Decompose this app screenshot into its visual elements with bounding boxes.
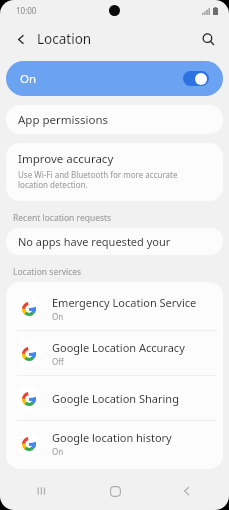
button[interactable]: Google Location Sharing bbox=[6, 376, 223, 420]
button[interactable]: Google Location Accuracy bbox=[6, 331, 223, 375]
staticText: On bbox=[52, 311, 64, 322]
staticText: Recent location requests bbox=[13, 212, 112, 224]
staticText: App permissions bbox=[18, 112, 109, 128]
button[interactable]: App permissions bbox=[6, 105, 223, 134]
button[interactable]: Google location history bbox=[6, 421, 223, 465]
staticText: Off bbox=[52, 356, 64, 367]
staticText: Improve accuracy bbox=[18, 151, 114, 167]
button[interactable]: Back bbox=[7, 25, 35, 53]
staticText: On bbox=[20, 71, 37, 87]
staticText: Google location history bbox=[52, 430, 172, 445]
staticText: 10:00 bbox=[16, 5, 37, 16]
button[interactable]: Back bbox=[173, 477, 201, 505]
button[interactable]: Emergency Location Service bbox=[6, 286, 223, 330]
button[interactable]: Search bbox=[194, 25, 222, 53]
button[interactable]: Recents bbox=[28, 477, 56, 505]
staticText: Emergency Location Service bbox=[52, 295, 197, 310]
staticText: Location bbox=[37, 30, 92, 48]
staticText: Google Location Accuracy bbox=[52, 340, 185, 355]
staticText: Use Wi-Fi and Bluetooth for more accurat… bbox=[18, 169, 209, 191]
staticText: On bbox=[52, 446, 64, 457]
button[interactable]: Home bbox=[101, 477, 129, 505]
staticText: No apps have requested your location.. bbox=[18, 234, 211, 249]
staticText: Location services bbox=[13, 266, 82, 278]
button[interactable]: On bbox=[6, 61, 223, 96]
button[interactable]: No apps have requested your location.. bbox=[6, 228, 223, 255]
button[interactable]: Improve accuracy bbox=[6, 143, 223, 201]
staticText: Google Location Sharing bbox=[52, 391, 179, 406]
